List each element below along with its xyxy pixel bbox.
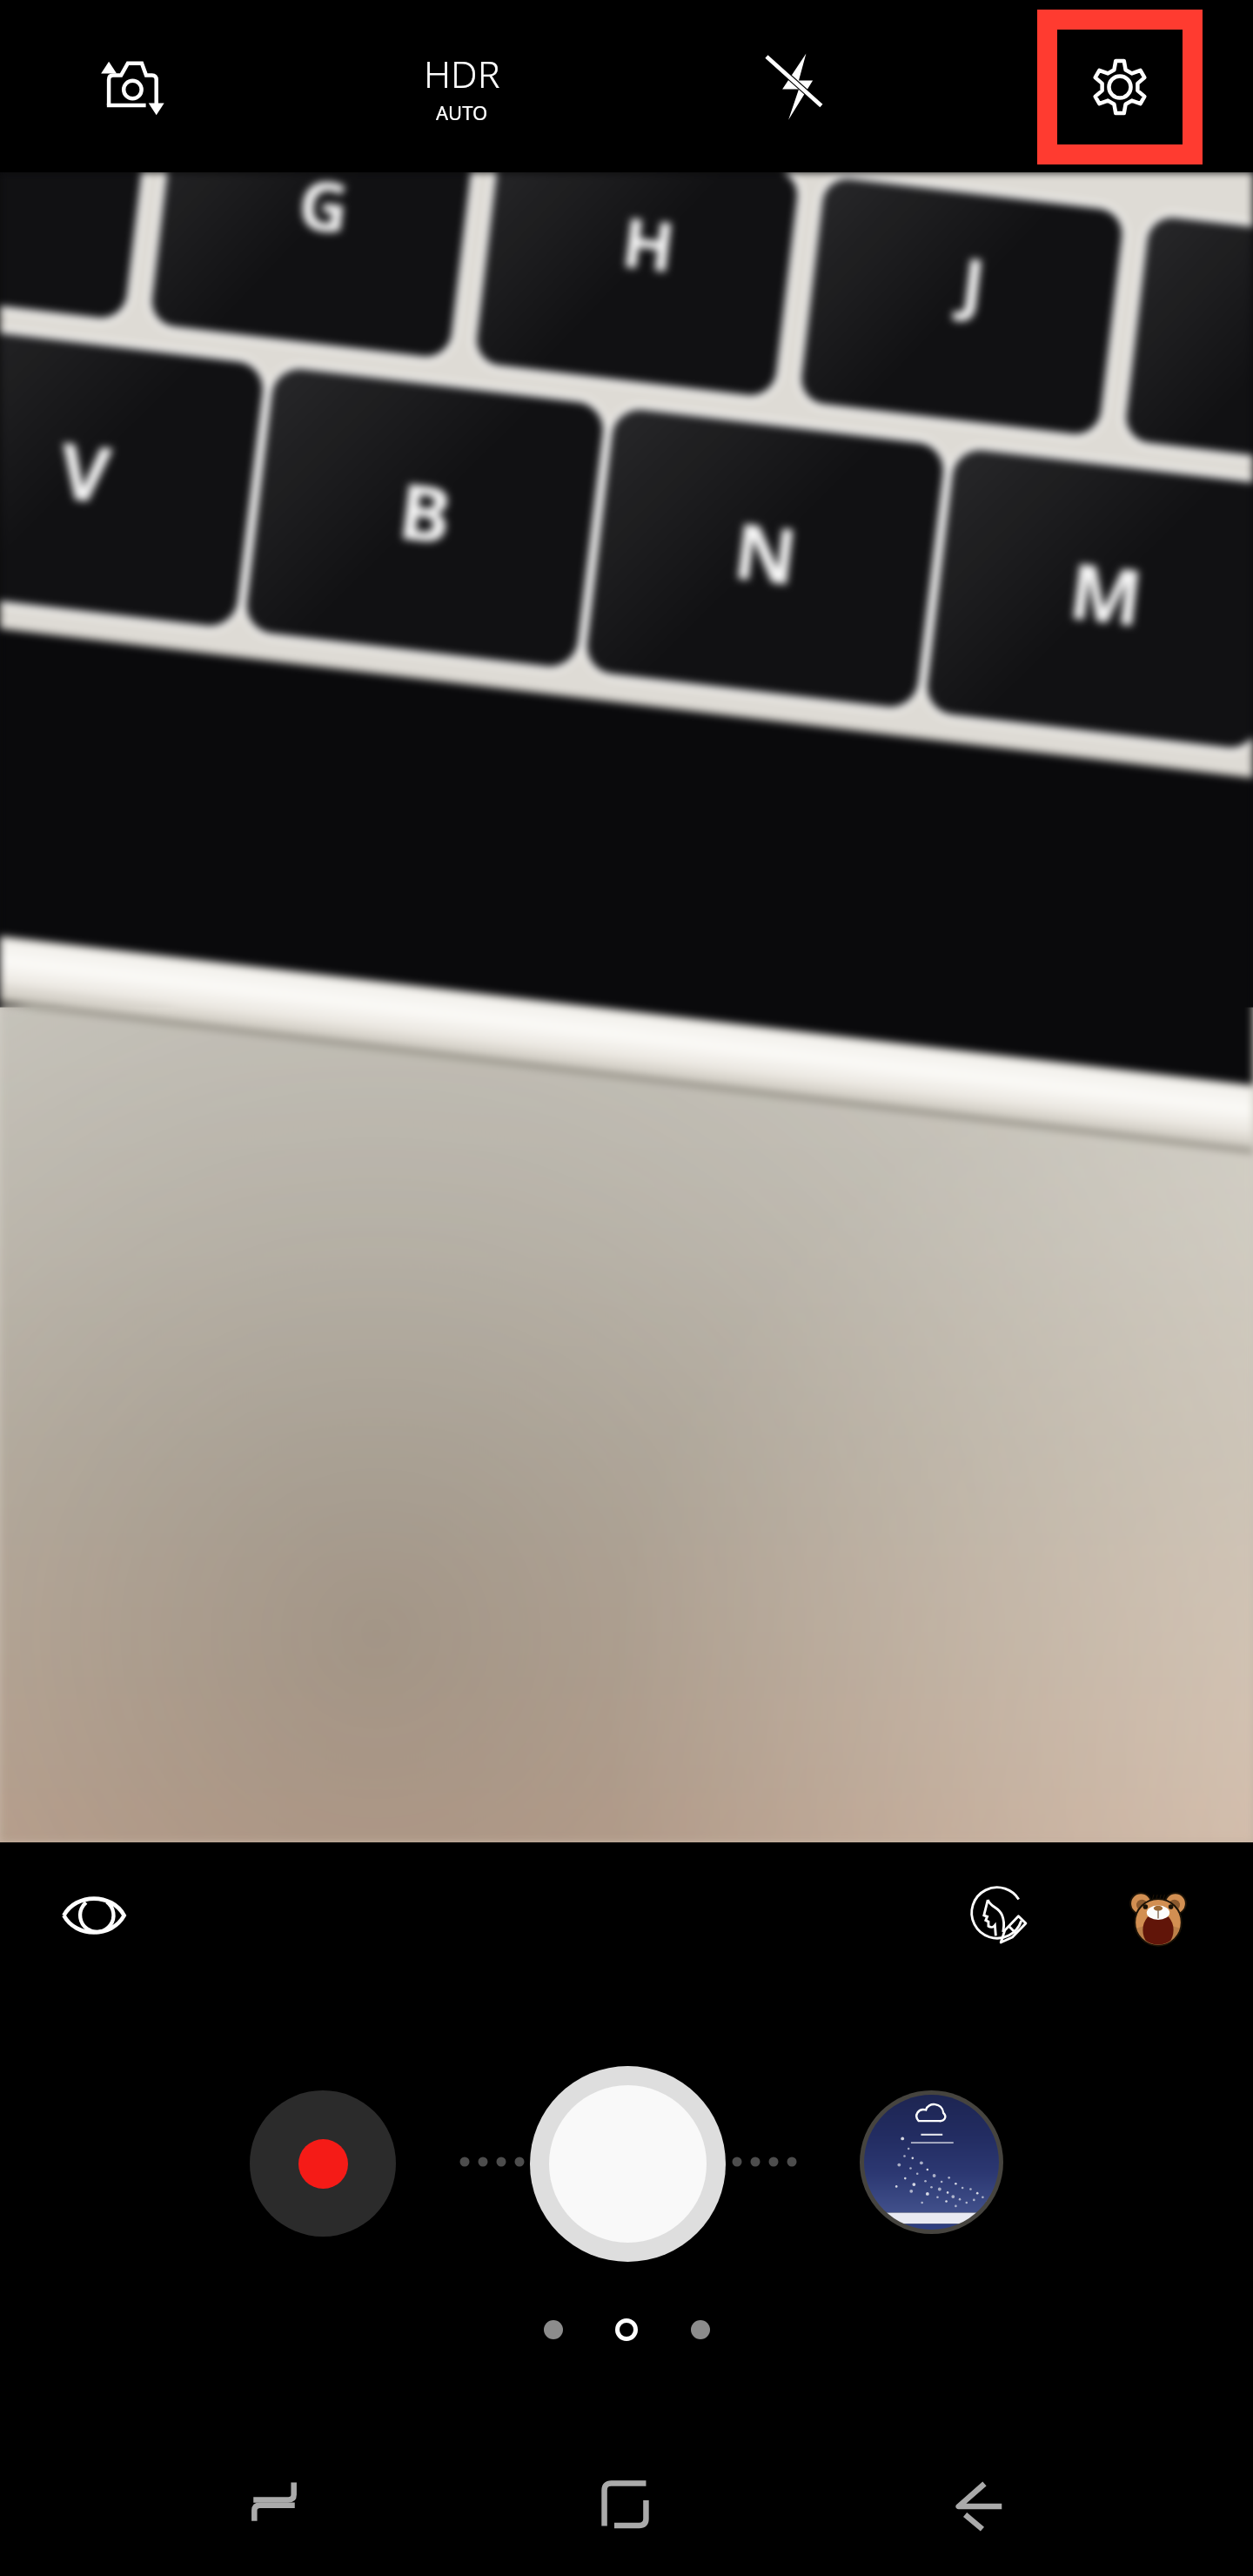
button[interactable]: Record video xyxy=(250,2090,396,2237)
button[interactable]: AR Emoji xyxy=(1097,1856,1219,1978)
button[interactable]: Take photo xyxy=(530,2066,726,2262)
button[interactable]: Beauty xyxy=(939,1855,1061,1976)
button[interactable]: Back xyxy=(904,2443,1052,2565)
button[interactable]: Home xyxy=(551,2443,699,2565)
button[interactable]: Settings xyxy=(1057,30,1183,144)
button[interactable]: Switch camera xyxy=(80,30,184,143)
button[interactable]: Flash off xyxy=(736,30,849,143)
button[interactable]: Recent apps xyxy=(200,2443,348,2565)
button[interactable]: Eye comfort xyxy=(33,1855,155,1976)
staticText: HDR xyxy=(424,48,500,99)
button[interactable]: HDR xyxy=(358,24,566,148)
staticText: AUTO xyxy=(436,99,488,125)
button[interactable]: Gallery xyxy=(864,2095,999,2230)
